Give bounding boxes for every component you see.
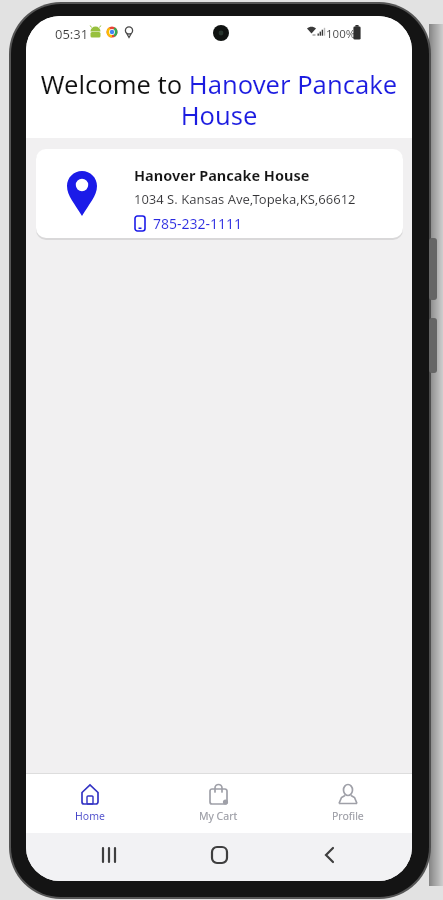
staticText: Welcome to Hanover Pancake House xyxy=(26,67,412,133)
button[interactable] xyxy=(283,833,412,881)
button[interactable] xyxy=(26,833,154,881)
staticText: 785-232-1111 xyxy=(153,214,243,233)
button[interactable]: Profile xyxy=(283,774,412,833)
button[interactable]: Home xyxy=(26,774,154,833)
button[interactable]: 785-232-1111 xyxy=(134,214,243,233)
staticText: 100% xyxy=(326,26,356,42)
staticText: Hanover Pancake House xyxy=(134,165,310,185)
staticText: Profile xyxy=(332,809,364,823)
button[interactable]: My Cart xyxy=(154,774,283,833)
staticText: Home xyxy=(75,809,105,823)
button[interactable]: Hanover Pancake House xyxy=(36,149,403,238)
button[interactable] xyxy=(154,833,283,881)
staticText: My Cart xyxy=(199,809,238,823)
staticText: 1034 S. Kansas Ave,Topeka,KS,66612 xyxy=(134,190,356,208)
staticText: 05:31 xyxy=(55,25,89,43)
